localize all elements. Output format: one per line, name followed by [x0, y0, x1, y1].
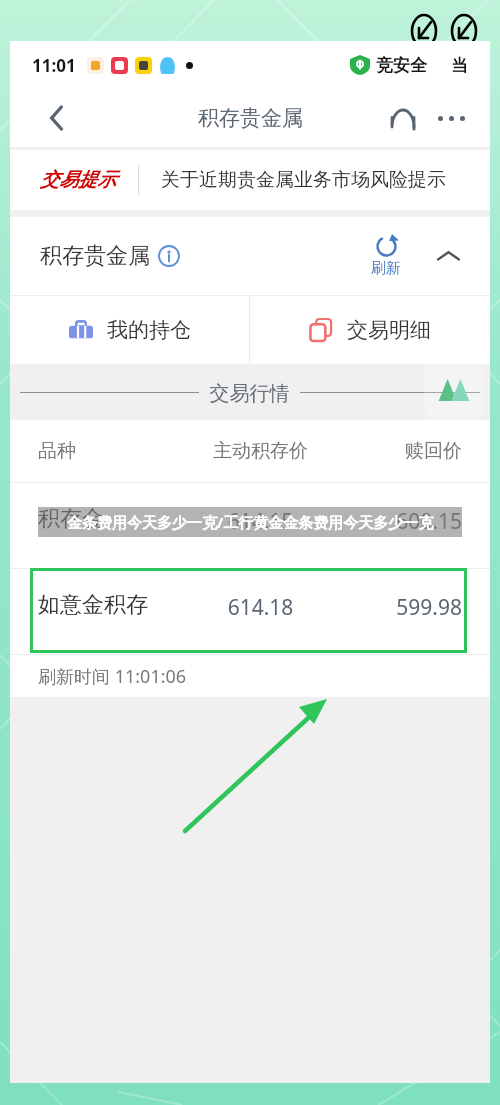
staticText: 主动积存价	[179, 439, 342, 463]
button[interactable]: More options	[428, 95, 474, 141]
staticText: 当	[451, 55, 468, 76]
staticText: 我的持仓	[107, 317, 191, 343]
staticText: 600.15	[342, 507, 462, 536]
staticText: 614.18	[179, 593, 342, 622]
button[interactable]: 交易提示	[10, 150, 490, 210]
button[interactable]: 如意金积存	[10, 569, 490, 654]
staticText: 关于近期贵金属业务市场风险提示的...	[161, 168, 472, 192]
staticText: 品种	[38, 439, 179, 463]
button[interactable]	[30, 568, 467, 653]
staticText: 599.98	[342, 593, 462, 622]
button[interactable]: 积存金	[10, 483, 490, 568]
staticText: 11:01	[32, 54, 76, 77]
staticText: 赎回价	[342, 439, 462, 463]
button[interactable]: Collapse	[428, 236, 468, 276]
button[interactable]: 刷新	[368, 231, 404, 281]
button[interactable]: Information	[158, 245, 180, 267]
staticText: 614.15	[179, 507, 342, 536]
staticText: 刷新	[371, 259, 401, 278]
button[interactable]: Back	[34, 95, 80, 141]
staticText: 积存贵金属	[40, 242, 150, 270]
staticText: 交易明细	[347, 317, 431, 343]
staticText: 交易行情	[199, 379, 300, 406]
staticText: 竞安全	[376, 55, 427, 76]
staticText: 刷新时间 11:01:06	[38, 664, 187, 689]
staticText: 积存贵金属	[198, 105, 303, 131]
button[interactable]: 交易明细	[250, 296, 490, 364]
staticText: 交易提示	[40, 168, 116, 192]
staticText: 如意金积存	[38, 591, 179, 619]
staticText: 金条费用今天多少一克/工行黄金金条费用今天多少一克	[67, 512, 434, 532]
button[interactable]: Customer service	[380, 95, 426, 141]
button[interactable]: Chart image	[424, 360, 484, 420]
staticText: 积存金	[38, 505, 179, 533]
other: Annotation marks	[408, 14, 484, 48]
button[interactable]: 我的持仓	[10, 296, 249, 364]
